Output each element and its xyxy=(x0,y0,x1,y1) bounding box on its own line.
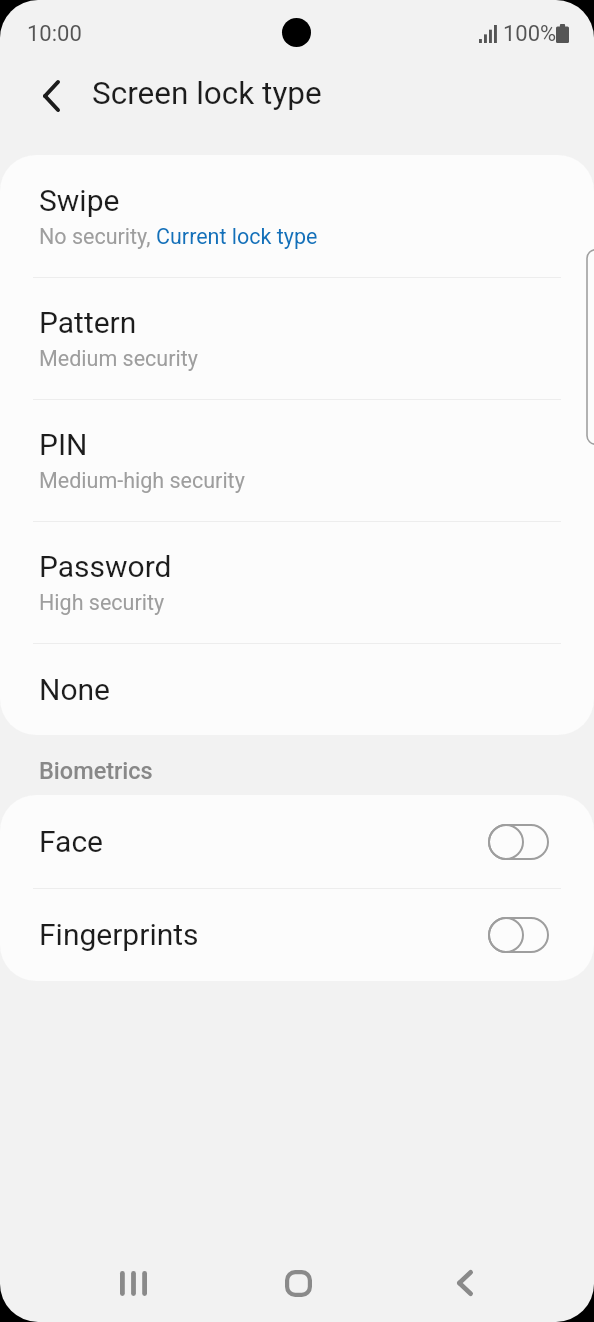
button[interactable]: Fingerprints xyxy=(0,888,594,981)
button[interactable]: PIN xyxy=(0,399,594,521)
staticText: Medium security xyxy=(39,346,198,371)
button[interactable]: Toggle Face xyxy=(488,824,549,860)
button[interactable]: Recent apps xyxy=(93,1244,173,1322)
staticText: Password xyxy=(39,549,172,584)
staticText: None xyxy=(39,672,110,707)
staticText: 100% xyxy=(503,21,557,47)
staticText: High security xyxy=(39,590,165,615)
staticText: Medium-high security xyxy=(39,468,245,493)
staticText: Biometrics xyxy=(39,757,153,785)
button[interactable]: Pattern xyxy=(0,277,594,399)
staticText: 10:00 xyxy=(27,21,82,47)
button[interactable]: Navigate up xyxy=(18,63,84,129)
staticText: Pattern xyxy=(39,305,137,340)
staticText: Fingerprints xyxy=(39,917,199,952)
staticText: Screen lock type xyxy=(92,75,322,112)
staticText: PIN xyxy=(39,427,88,462)
button[interactable]: None xyxy=(0,643,594,735)
button[interactable]: Home xyxy=(258,1244,338,1322)
staticText: Current lock type xyxy=(156,224,318,249)
button[interactable]: Back xyxy=(425,1244,505,1322)
staticText: No security, xyxy=(39,224,156,249)
staticText: Swipe xyxy=(39,183,120,218)
staticText: Face xyxy=(39,824,104,859)
button[interactable]: Swipe xyxy=(0,155,594,277)
button[interactable]: Password xyxy=(0,521,594,643)
button[interactable]: Face xyxy=(0,795,594,888)
button[interactable]: Toggle Fingerprints xyxy=(488,917,549,953)
